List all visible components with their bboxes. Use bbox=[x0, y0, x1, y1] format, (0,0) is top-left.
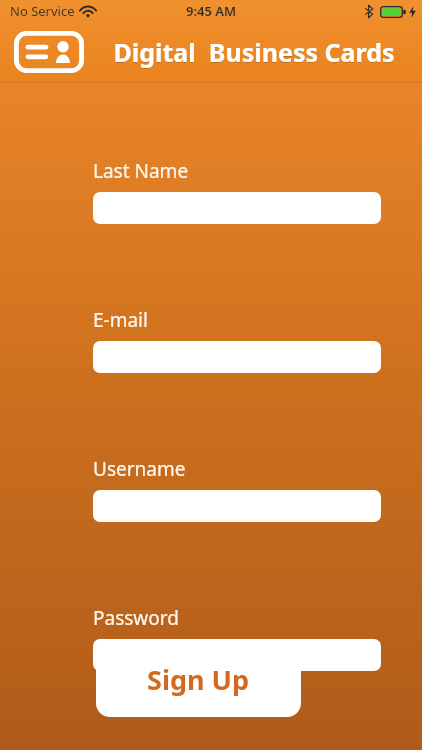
staticText: E-mail bbox=[93, 307, 148, 333]
staticText: Digital Business Cards bbox=[92, 36, 416, 70]
staticText: Password bbox=[93, 605, 179, 631]
staticText: Last Name bbox=[93, 158, 189, 184]
button[interactable] bbox=[93, 639, 381, 671]
staticText: Digital Business Cards bbox=[92, 35, 416, 69]
staticText: No Service bbox=[10, 2, 75, 20]
staticText: Username bbox=[93, 456, 186, 482]
button[interactable] bbox=[93, 341, 381, 373]
staticText: 9:45 AM bbox=[186, 2, 237, 20]
button[interactable] bbox=[93, 490, 381, 522]
button[interactable]: Digital business cards bbox=[12, 30, 86, 74]
button[interactable] bbox=[93, 192, 381, 224]
staticText: Sign Up bbox=[147, 661, 250, 698]
button[interactable]: Sign Up bbox=[96, 641, 301, 717]
